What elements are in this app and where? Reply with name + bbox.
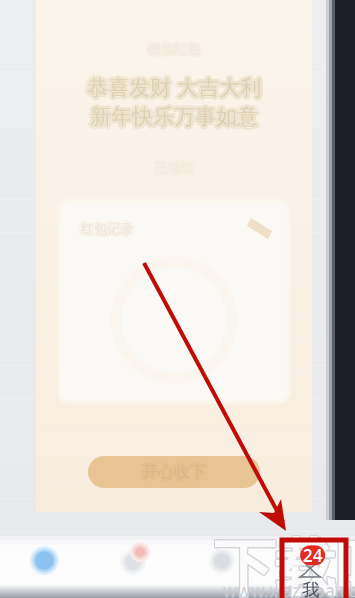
staticText: 下载吧 <box>214 530 355 598</box>
staticText: 微信红包 <box>150 39 202 56</box>
staticText: 已领取 <box>154 160 193 176</box>
staticText: 红包记录 <box>83 221 135 237</box>
button[interactable]: 微信 <box>0 536 89 598</box>
staticText: 下载吧 <box>214 532 355 598</box>
staticText: 微信红包 <box>146 39 198 56</box>
staticText: 微信红包 <box>148 41 200 57</box>
staticText: 开心收下 <box>142 462 206 482</box>
staticText: 微信红包 <box>146 41 198 57</box>
staticText: 新年快乐万事如意 <box>90 106 258 133</box>
button[interactable]: 24 <box>266 536 355 598</box>
staticText: 红包记录 <box>81 221 133 237</box>
staticText: 新年快乐万事如意 <box>87 104 255 130</box>
staticText: 开心收下 <box>142 464 206 484</box>
button[interactable]: 发现 <box>177 536 266 598</box>
staticText: 我 <box>302 579 319 598</box>
staticText: 微信红包 <box>146 42 198 59</box>
button[interactable]: 开心收下 <box>84 452 264 492</box>
staticText: 新年快乐万事如意 <box>93 104 261 130</box>
staticText: 恭喜发财 大吉大利 <box>84 75 258 101</box>
staticText: 微信红包 <box>148 39 200 55</box>
staticText: 新年快乐万事如意 <box>88 102 256 128</box>
staticText: 开心收下 <box>140 462 204 482</box>
staticText: 开心收下 <box>140 464 204 483</box>
staticText: 已领取 <box>152 160 191 176</box>
staticText: 开心收下 <box>144 462 208 482</box>
staticText: 下载吧 <box>215 530 355 598</box>
staticText: 下载吧 <box>213 530 355 598</box>
staticText: 下载吧 <box>213 532 355 598</box>
staticText: 新年快乐万事如意 <box>88 106 256 132</box>
staticText: 恭喜发财 大吉大利 <box>87 72 261 98</box>
staticText: 恭喜发财 大吉大利 <box>85 73 259 99</box>
staticText: 恭喜发财 大吉大利 <box>85 77 259 103</box>
staticText: 红包记录 <box>81 219 133 235</box>
staticText: 红包记录 <box>79 222 131 239</box>
staticText: 下载吧 <box>215 532 355 598</box>
staticText: 新年快乐万事如意 <box>92 102 260 128</box>
staticText: 恭喜发财 大吉大利 <box>89 77 263 103</box>
staticText: 新年快乐万事如意 <box>92 106 260 132</box>
staticText: 开心收下 <box>144 461 208 480</box>
staticText: 已领取 <box>157 160 196 176</box>
staticText: 下载吧 <box>214 531 355 598</box>
staticText: 已领取 <box>154 158 193 174</box>
staticText: 已领取 <box>154 162 193 178</box>
staticText: 下载吧 <box>213 531 355 598</box>
staticText: 开心收下 <box>140 461 204 480</box>
staticText: 红包记录 <box>81 223 133 239</box>
staticText: 开心收下 <box>142 460 206 480</box>
button[interactable]: 通讯录 <box>89 536 178 598</box>
staticText: 新年快乐万事如意 <box>90 101 258 127</box>
staticText: 24 <box>303 544 323 567</box>
staticText: www.xiazaiba.com <box>223 579 355 598</box>
staticText: 红包记录 <box>83 219 135 236</box>
staticText: 已领取 <box>153 158 192 175</box>
staticText: 已领取 <box>153 161 192 178</box>
staticText: 恭喜发财 大吉大利 <box>89 73 263 99</box>
staticText: 下载吧 <box>215 531 355 598</box>
staticText: 已领取 <box>156 161 195 178</box>
staticText: 红包记录 <box>79 221 131 237</box>
staticText: 恭喜发财 大吉大利 <box>90 75 264 101</box>
staticText: 开心收下 <box>144 464 208 483</box>
staticText: 微信红包 <box>148 43 200 59</box>
staticText: 恭喜发财 大吉大利 <box>87 75 261 101</box>
staticText: 已领取 <box>156 158 195 175</box>
staticText: 微信红包 <box>150 41 202 57</box>
staticText: 微信红包 <box>150 42 202 59</box>
staticText: 红包记录 <box>83 222 135 239</box>
staticText: 红包记录 <box>79 219 131 236</box>
staticText: 恭喜发财 大吉大利 <box>87 77 261 104</box>
staticText: 新年快乐万事如意 <box>90 104 258 130</box>
